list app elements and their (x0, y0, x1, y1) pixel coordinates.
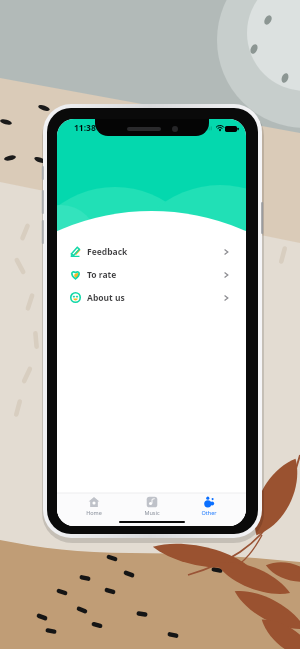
button[interactable]: About us (57, 286, 246, 309)
staticText: About us (87, 292, 125, 304)
staticText: Music (144, 509, 160, 516)
staticText: Home (86, 509, 102, 516)
button[interactable]: Home (73, 495, 115, 517)
staticText: Feedback (87, 246, 128, 258)
button[interactable]: Music (131, 495, 173, 517)
button[interactable]: Other (188, 495, 230, 517)
staticText: 11:38 (74, 122, 96, 134)
button[interactable]: To rate (57, 263, 246, 286)
staticText: To rate (87, 269, 117, 281)
button[interactable]: Feedback (57, 240, 246, 263)
staticText: Other (201, 509, 217, 516)
